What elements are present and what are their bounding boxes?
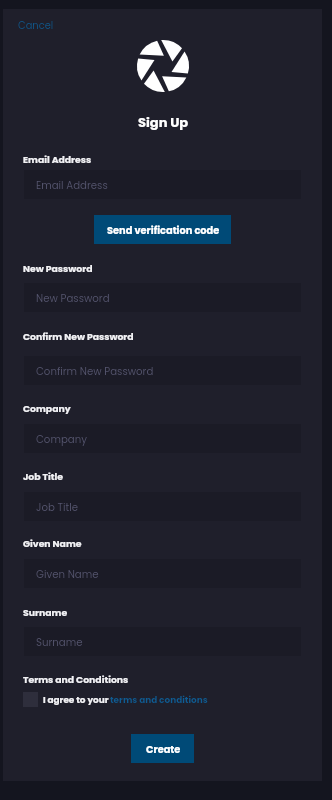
other: Application logo — [137, 40, 189, 92]
staticText: Email Address — [36, 178, 108, 192]
button[interactable]: Cancel — [14, 16, 58, 36]
button[interactable]: New Password — [24, 283, 301, 312]
staticText: Surname — [36, 635, 83, 649]
button[interactable]: Surname — [24, 627, 301, 656]
button[interactable]: Email Address — [24, 170, 301, 199]
button[interactable]: Confirm New Password — [24, 356, 301, 385]
staticText: Email Address — [23, 153, 92, 166]
staticText: Company — [36, 432, 87, 446]
staticText: New Password — [23, 262, 93, 275]
button[interactable]: Create — [131, 734, 194, 763]
button[interactable]: Send verification code — [94, 215, 231, 244]
staticText: New Password — [36, 291, 110, 305]
staticText: Given Name — [36, 567, 99, 581]
button[interactable]: Company — [24, 424, 301, 453]
staticText: I agree to your — [43, 694, 109, 706]
staticText: Send verification code — [107, 224, 220, 238]
button[interactable]: Accept terms checkbox — [23, 692, 109, 707]
staticText: Create — [146, 743, 181, 757]
staticText: Terms and Conditions — [23, 673, 129, 686]
staticText: Surname — [23, 606, 68, 619]
staticText: Job Title — [36, 500, 79, 514]
staticText: Cancel — [18, 19, 54, 33]
button[interactable]: Job Title — [24, 492, 301, 521]
staticText: Company — [23, 402, 71, 415]
staticText: Confirm New Password — [23, 330, 134, 343]
staticText: Confirm New Password — [36, 364, 154, 378]
staticText: Job Title — [23, 470, 64, 483]
staticText: Given Name — [23, 537, 82, 550]
staticText: terms and conditions — [110, 694, 208, 706]
button[interactable]: Given Name — [24, 559, 301, 588]
button[interactable]: terms and conditions — [110, 694, 208, 706]
staticText: Sign Up — [138, 113, 189, 131]
